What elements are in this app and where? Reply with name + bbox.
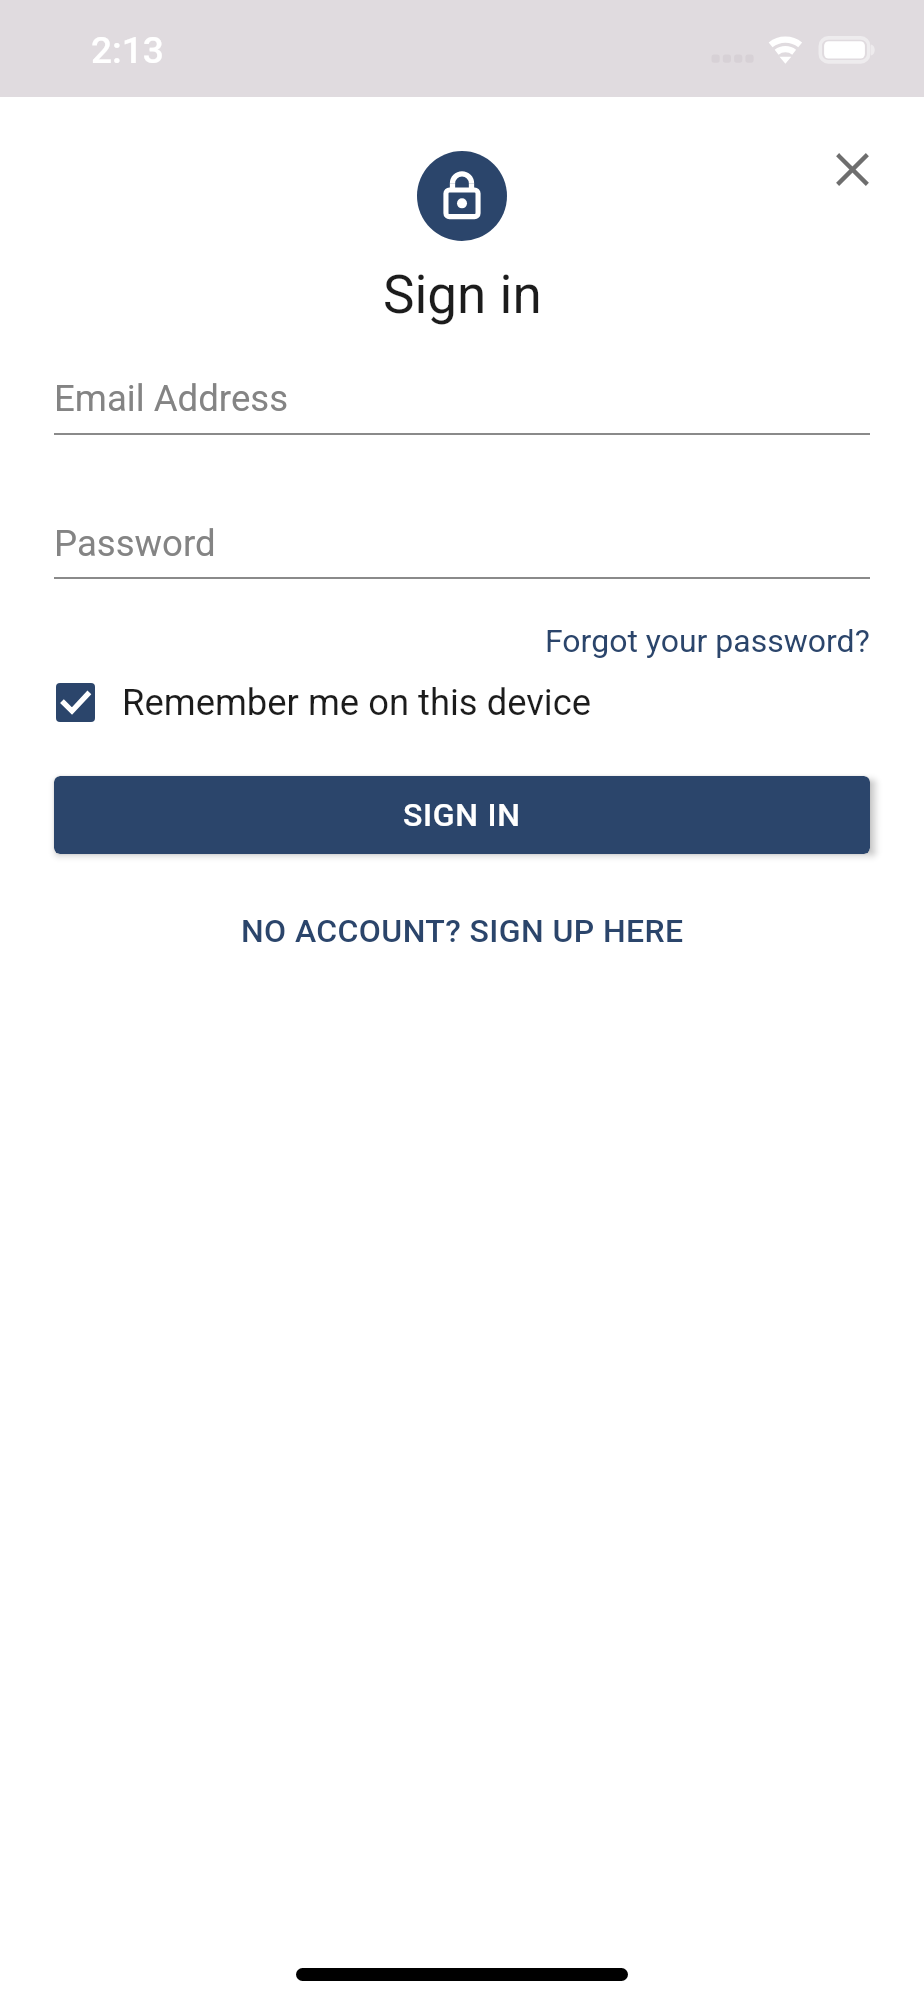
staticText: Password (54, 522, 216, 565)
staticText: 2:13 (91, 29, 164, 72)
staticText: SIGN IN (403, 796, 521, 834)
button[interactable]: NO ACCOUNT? SIGN UP HERE (225, 906, 700, 956)
button[interactable]: Forgot your password? (545, 622, 870, 660)
staticText: Remember me on this device (122, 681, 592, 724)
button[interactable]: Remember me on this device (56, 681, 870, 724)
button[interactable]: Close (808, 125, 897, 214)
button[interactable]: Password (54, 516, 870, 579)
button[interactable]: Email Address (54, 371, 870, 435)
staticText: Sign in (383, 264, 542, 326)
staticText: Email Address (54, 377, 289, 420)
button[interactable]: SIGN IN (54, 776, 870, 854)
staticText: NO ACCOUNT? SIGN UP HERE (241, 912, 684, 950)
staticText: Forgot your password? (545, 622, 870, 660)
